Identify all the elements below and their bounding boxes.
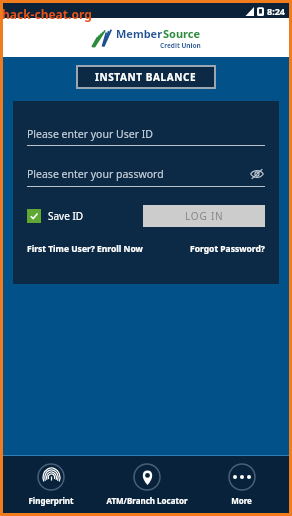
button[interactable]: Fingerprint — [3, 459, 99, 510]
button[interactable]: INSTANT BALANCE — [76, 65, 216, 89]
staticText: Credit Union — [160, 41, 201, 50]
staticText: ATM/Branch Locator — [106, 495, 188, 506]
staticText: Please enter your password — [27, 167, 164, 181]
staticText: Source — [163, 26, 201, 41]
button[interactable]: ATM/Branch Locator — [99, 459, 194, 510]
staticText: Save ID — [48, 209, 84, 223]
button[interactable]: Save ID — [27, 209, 84, 223]
staticText: 8:24 — [267, 5, 285, 17]
button[interactable]: LOG IN — [143, 205, 265, 227]
staticText: hack-cheat.org — [2, 6, 92, 22]
staticText: Please enter your User ID — [27, 127, 153, 141]
button[interactable]: Show password — [249, 166, 265, 182]
button[interactable]: More — [194, 459, 289, 510]
staticText: More — [231, 495, 252, 506]
button[interactable]: First Time User? Enroll Now — [27, 243, 143, 255]
button[interactable]: Forgot Password? — [190, 243, 265, 255]
staticText: Member — [116, 26, 163, 41]
staticText: First Time User? Enroll Now — [27, 243, 143, 255]
staticText: INSTANT BALANCE — [95, 70, 197, 84]
staticText: Fingerprint — [28, 495, 74, 506]
button[interactable]: Please enter your password — [27, 166, 265, 187]
staticText: Forgot Password? — [190, 243, 265, 255]
button[interactable]: Please enter your User ID — [27, 127, 265, 146]
staticText: LOG IN — [185, 209, 224, 223]
